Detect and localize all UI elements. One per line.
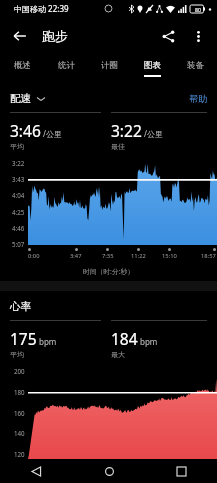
staticText: 时间（时:分:秒） xyxy=(0,267,217,276)
staticText: 统计 xyxy=(58,60,75,71)
staticText: 最大 xyxy=(111,350,125,359)
staticText: 200 xyxy=(14,367,25,375)
staticText: 4:04 xyxy=(12,191,25,199)
staticText: 5:07 xyxy=(12,240,25,248)
staticText: 装备 xyxy=(187,60,204,71)
staticText: 心率 xyxy=(10,300,31,313)
staticText: 184 xyxy=(111,328,138,349)
staticText: 175 xyxy=(10,328,37,349)
staticText: 160 xyxy=(14,409,25,417)
staticText: 计圈 xyxy=(101,60,118,71)
staticText: 15:10 xyxy=(162,252,177,260)
staticText: 平均 xyxy=(10,350,24,359)
button[interactable]: 图表 xyxy=(131,55,174,81)
staticText: 3:47 xyxy=(70,252,82,260)
staticText: 配速 xyxy=(10,92,31,105)
staticText: 180 xyxy=(14,388,25,396)
staticText: bpm xyxy=(39,336,57,347)
staticText: 140 xyxy=(14,429,25,437)
staticText: 4:25 xyxy=(12,208,25,216)
staticText: 3:46 xyxy=(10,120,41,141)
staticText: 3:22 xyxy=(12,159,25,167)
staticText: 平均 xyxy=(10,142,24,151)
button[interactable]: 配速 xyxy=(10,92,45,105)
staticText: 概述 xyxy=(14,60,31,71)
staticText: bpm xyxy=(140,336,158,347)
button[interactable]: More options xyxy=(183,21,213,51)
staticText: 3:22 xyxy=(111,120,142,141)
button[interactable]: 统计 xyxy=(44,55,88,81)
staticText: /公里 xyxy=(43,128,62,139)
button[interactable]: Share xyxy=(153,21,183,51)
button[interactable]: Back xyxy=(0,459,73,483)
staticText: 11:22 xyxy=(131,252,146,260)
staticText: 0:00 xyxy=(28,252,40,260)
staticText: 3:43 xyxy=(12,175,25,183)
staticText: 18:57 xyxy=(201,252,216,260)
staticText: 帮助 xyxy=(189,93,207,104)
button[interactable]: Home xyxy=(73,459,145,483)
button[interactable]: 计圈 xyxy=(88,55,131,81)
staticText: 中国移动 22:39 xyxy=(14,3,69,14)
button[interactable]: 概述 xyxy=(0,55,44,81)
staticText: 跑步 xyxy=(42,28,68,44)
staticText: 4:46 xyxy=(12,224,25,232)
staticText: 7:35 xyxy=(102,252,114,260)
staticText: /公里 xyxy=(144,128,163,139)
staticText: 最佳 xyxy=(111,142,125,151)
staticText: 120 xyxy=(14,450,25,458)
button[interactable]: Recents xyxy=(145,459,217,483)
button[interactable]: 装备 xyxy=(174,55,217,81)
button[interactable]: Back xyxy=(5,21,35,51)
button[interactable]: 帮助 xyxy=(189,93,207,104)
staticText: 80 xyxy=(195,6,201,13)
staticText: 图表 xyxy=(144,60,161,71)
